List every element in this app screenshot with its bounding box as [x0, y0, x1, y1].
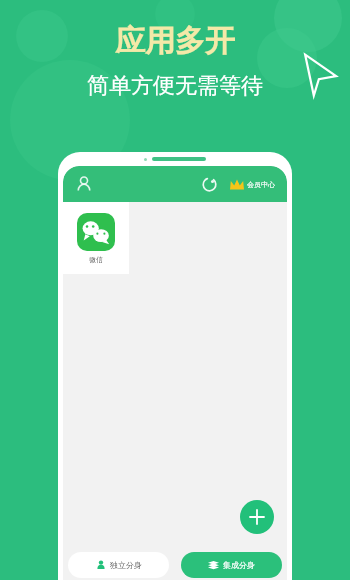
button[interactable]: 独立分身 — [68, 552, 169, 578]
other: Pointer — [303, 52, 339, 96]
staticText: 独立分身 — [110, 560, 142, 570]
staticText: 简单方便无需等待 — [87, 72, 263, 100]
button[interactable]: 微信 — [63, 202, 129, 274]
staticText: 微信 — [89, 255, 103, 264]
button[interactable]: 会员中心 — [228, 177, 277, 192]
button[interactable]: Refresh — [198, 173, 220, 195]
staticText: 应用多开 — [115, 22, 235, 60]
staticText: 集成分身 — [223, 560, 255, 570]
button[interactable]: 集成分身 — [181, 552, 282, 578]
staticText: 会员中心 — [247, 180, 275, 189]
button[interactable]: Add — [240, 500, 274, 534]
button[interactable]: Account — [73, 173, 95, 195]
